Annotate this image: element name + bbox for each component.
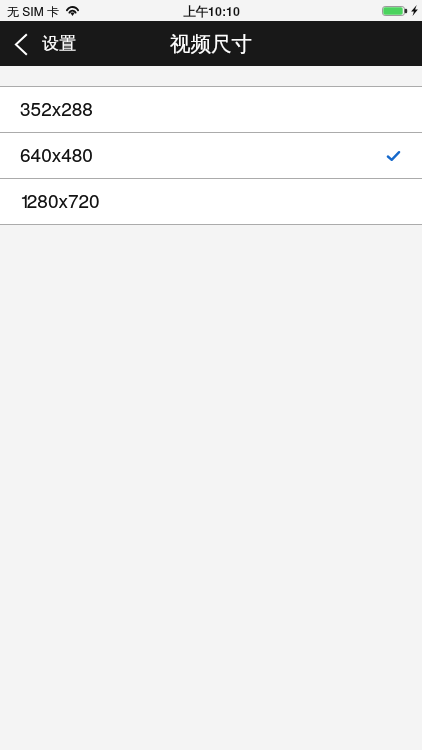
staticText: 1280x720 — [20, 186, 100, 213]
button[interactable]: 1280x720 — [0, 179, 422, 224]
button[interactable]: Back — [0, 26, 90, 61]
staticText: 上午10:10 — [183, 2, 240, 20]
staticText: 1280x720 — [20, 186, 100, 213]
staticText: 无 SIM 卡 — [7, 2, 60, 19]
staticText: 640x480 — [20, 140, 93, 167]
staticText: 设置 — [42, 33, 76, 54]
other: Battery full — [382, 6, 408, 16]
other: Back — [15, 34, 27, 55]
other: Selected — [387, 151, 400, 161]
other: Wi-Fi — [66, 6, 79, 16]
staticText: 视频尺寸 — [170, 31, 252, 57]
staticText: 无 SIM 卡 — [7, 2, 60, 19]
staticText: 352x288 — [20, 94, 93, 121]
button[interactable]: 640x480 — [0, 133, 422, 178]
other: Charging — [411, 5, 418, 16]
staticText: 640x480 — [20, 140, 93, 167]
button[interactable]: 352x288 — [0, 87, 422, 132]
staticText: 352x288 — [20, 94, 93, 121]
